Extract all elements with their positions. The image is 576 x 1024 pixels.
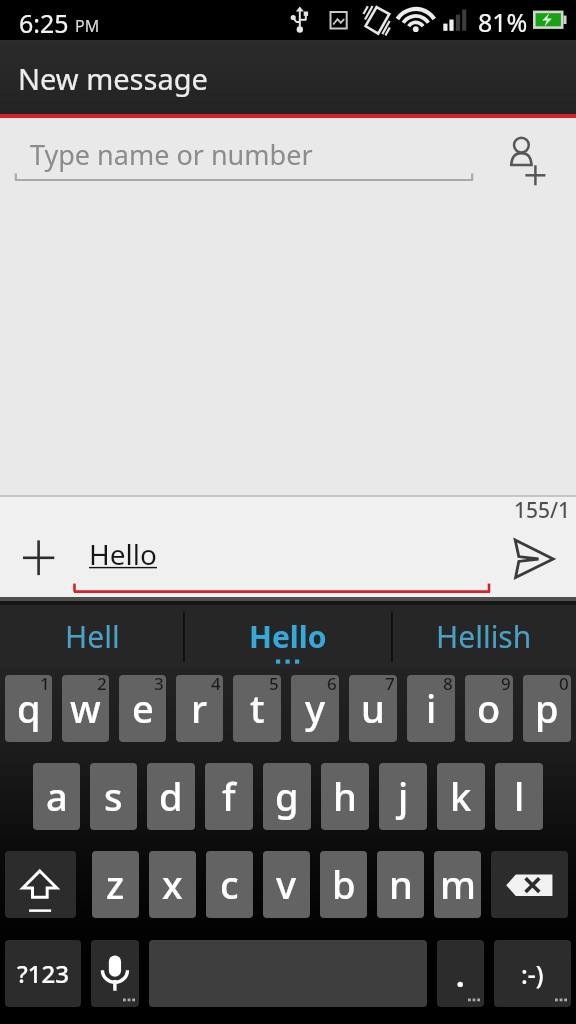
button[interactable]: .: [437, 940, 484, 1007]
button[interactable]: ?123: [5, 940, 81, 1007]
button[interactable]: o: [465, 675, 513, 742]
button[interactable]: p: [523, 675, 571, 742]
button[interactable]: x: [149, 851, 196, 918]
button[interactable]: t: [233, 675, 281, 742]
button[interactable]: Backspace: [491, 851, 568, 918]
button[interactable]: u: [349, 675, 397, 742]
staticText: c: [220, 858, 239, 910]
staticText: z: [106, 858, 125, 910]
staticText: k: [450, 770, 472, 822]
staticText: m: [440, 858, 476, 910]
button[interactable]: j: [379, 763, 427, 830]
button[interactable]: c: [206, 851, 253, 918]
staticText: 9: [501, 675, 511, 695]
staticText: Hell: [65, 616, 120, 657]
button[interactable]: v: [263, 851, 310, 918]
button[interactable]: r: [176, 675, 223, 742]
staticText: p: [535, 682, 559, 734]
staticText: PM: [75, 15, 100, 37]
staticText: o: [477, 682, 501, 734]
staticText: 0: [559, 675, 569, 695]
staticText: 3: [154, 675, 164, 695]
button[interactable]: i: [407, 675, 455, 742]
staticText: v: [276, 858, 297, 910]
button[interactable]: Add contact: [503, 130, 551, 178]
staticText: Hello: [249, 616, 327, 657]
button[interactable]: h: [321, 763, 369, 830]
staticText: h: [333, 770, 357, 822]
staticText: l: [514, 770, 525, 822]
staticText: j: [398, 770, 409, 822]
button[interactable]: Shift: [5, 851, 76, 918]
staticText: 8: [443, 675, 453, 695]
staticText: f: [222, 770, 236, 822]
button[interactable]: :-): [494, 940, 571, 1007]
staticText: 6: [327, 675, 337, 695]
button[interactable]: Send: [504, 532, 554, 582]
button[interactable]: Hello: [184, 605, 392, 669]
button[interactable]: Add attachment: [14, 533, 62, 581]
button[interactable]: l: [495, 763, 543, 830]
button[interactable]: a: [33, 763, 80, 830]
button[interactable]: d: [147, 763, 195, 830]
staticText: New message: [18, 59, 208, 98]
staticText: 1: [40, 675, 50, 695]
button[interactable]: b: [320, 851, 367, 918]
staticText: w: [70, 682, 101, 734]
staticText: n: [389, 858, 413, 910]
button[interactable]: q: [5, 675, 52, 742]
button[interactable]: New message: [0, 40, 576, 114]
staticText: g: [275, 770, 299, 822]
staticText: b: [332, 858, 356, 910]
staticText: 5: [269, 675, 279, 695]
staticText: s: [104, 770, 123, 822]
staticText: y: [305, 682, 326, 734]
button[interactable]: f: [205, 763, 253, 830]
button[interactable]: Hell: [0, 605, 184, 669]
staticText: Type name or number: [30, 136, 313, 173]
staticText: Hellish: [436, 616, 532, 657]
staticText: .: [456, 955, 465, 996]
button[interactable]: s: [90, 763, 137, 830]
staticText: r: [191, 682, 208, 734]
button[interactable]: y: [291, 675, 339, 742]
staticText: i: [426, 682, 437, 734]
staticText: 7: [385, 675, 395, 695]
button[interactable]: k: [437, 763, 485, 830]
staticText: d: [159, 770, 183, 822]
button[interactable]: e: [119, 675, 166, 742]
staticText: :-): [521, 957, 544, 991]
button[interactable]: g: [263, 763, 311, 830]
button[interactable]: w: [62, 675, 109, 742]
staticText: 4: [211, 675, 221, 695]
staticText: 6:25: [19, 6, 69, 40]
button[interactable]: m: [434, 851, 481, 918]
staticText: a: [46, 770, 68, 822]
staticText: 2: [97, 675, 107, 695]
button[interactable]: Voice input: [91, 940, 139, 1007]
button[interactable]: Hellish: [392, 605, 576, 669]
staticText: 155/1: [514, 496, 571, 525]
staticText: u: [361, 682, 385, 734]
staticText: ?123: [17, 957, 69, 990]
staticText: e: [132, 682, 154, 734]
staticText: t: [250, 682, 265, 734]
staticText: q: [17, 682, 41, 734]
staticText: 81%: [478, 5, 528, 39]
button[interactable]: n: [377, 851, 424, 918]
button[interactable]: z: [92, 851, 139, 918]
staticText: Hello: [89, 535, 157, 573]
staticText: x: [162, 858, 183, 910]
